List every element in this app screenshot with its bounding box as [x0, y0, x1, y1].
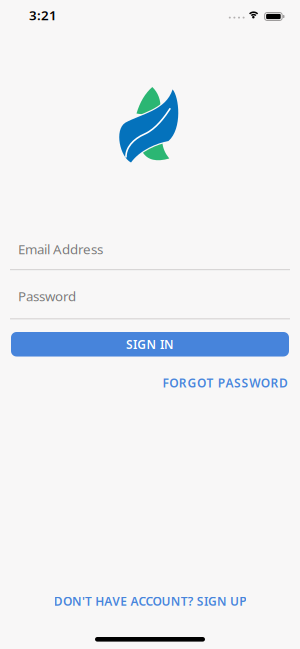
staticText: SIGN IN [126, 336, 174, 352]
button[interactable]: FORGOT PASSWORD [163, 375, 300, 391]
button[interactable]: DON'T HAVE ACCOUNT? SIGN UP [54, 593, 246, 609]
staticText: DON'T HAVE ACCOUNT? SIGN UP [54, 593, 246, 609]
button[interactable]: Email Address [0, 242, 300, 270]
staticText: FORGOT PASSWORD [163, 375, 288, 391]
staticText: Email Address [18, 240, 103, 258]
staticText: 3:21 [29, 6, 57, 24]
button[interactable]: SIGN IN [0, 332, 300, 356]
staticText: Password [18, 287, 76, 305]
button[interactable]: Password [0, 289, 300, 319]
